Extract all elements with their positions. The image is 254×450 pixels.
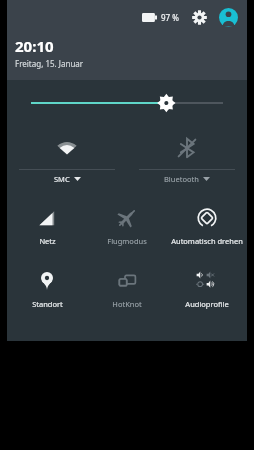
staticText: Automatisch drehen bbox=[171, 236, 243, 246]
button[interactable]: Flugmodus bbox=[87, 196, 167, 259]
button[interactable]: Netz bbox=[7, 196, 87, 259]
staticText: Standort bbox=[32, 299, 63, 309]
staticText: HotKnot bbox=[112, 299, 142, 309]
button[interactable]: Brightness bbox=[7, 80, 247, 126]
button[interactable]: Settings bbox=[189, 7, 209, 27]
button[interactable]: HotKnot bbox=[87, 259, 167, 322]
staticText: Flugmodus bbox=[107, 236, 147, 246]
staticText: 20:10 bbox=[15, 36, 54, 56]
other: Battery bbox=[142, 13, 157, 22]
staticText: Bluetooth bbox=[164, 174, 199, 184]
button[interactable]: Automatisch drehen bbox=[167, 196, 247, 259]
staticText: Audioprofile bbox=[185, 299, 229, 309]
button[interactable]: User profile bbox=[217, 6, 239, 28]
button[interactable]: Standort bbox=[7, 259, 87, 322]
staticText: Netz bbox=[39, 236, 56, 246]
staticText: 97 % bbox=[161, 12, 179, 23]
staticText: SMC bbox=[54, 174, 70, 184]
button[interactable]: Audioprofile bbox=[167, 259, 247, 322]
button[interactable]: SMC bbox=[7, 126, 127, 188]
staticText: Freitag, 15. Januar bbox=[15, 58, 84, 69]
button[interactable]: Bluetooth bbox=[127, 126, 247, 188]
